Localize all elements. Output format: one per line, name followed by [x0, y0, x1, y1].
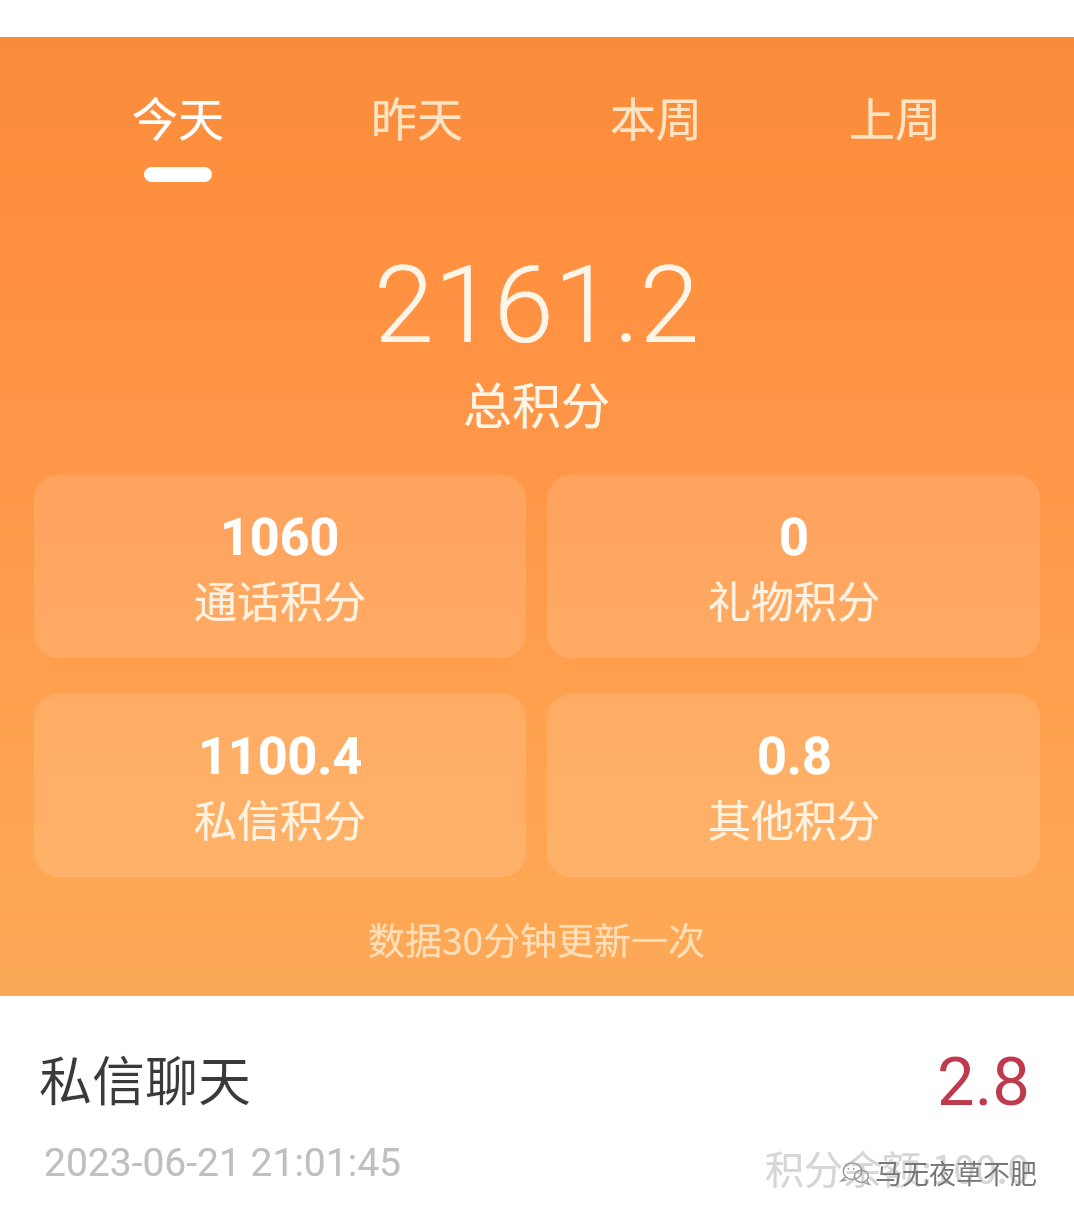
staticText: 昨天 — [371, 83, 463, 150]
staticText: 马无夜草不肥 — [875, 1153, 1037, 1189]
button[interactable]: 私信聊天 — [0, 1033, 1074, 1220]
staticText: 礼物积分 — [708, 568, 880, 630]
staticText: 上周 — [849, 83, 941, 150]
staticText: 本周 — [610, 83, 702, 150]
staticText: 0.8 — [757, 726, 832, 787]
staticText: 2023-06-21 21:01:45 — [44, 1140, 401, 1186]
staticText: 2161.2 — [374, 242, 700, 369]
button[interactable]: 昨天 — [297, 37, 536, 242]
staticText: 2.8 — [937, 1043, 1030, 1122]
staticText: 私信积分 — [194, 787, 366, 849]
staticText: 0 — [779, 507, 809, 568]
button[interactable]: 本周 — [536, 37, 775, 242]
button[interactable]: 0.8 — [547, 694, 1040, 877]
staticText: 今天 — [132, 83, 224, 150]
button[interactable]: 0 — [547, 475, 1040, 658]
other: WeChat — [838, 1155, 871, 1188]
staticText: 其他积分 — [708, 787, 880, 849]
staticText: 1060 — [220, 507, 340, 568]
staticText: 数据30分钟更新一次 — [368, 912, 706, 966]
button[interactable]: 上周 — [775, 37, 1014, 242]
button[interactable]: 今天 — [58, 37, 297, 242]
button[interactable]: 1060 — [34, 475, 526, 658]
button[interactable]: 1100.4 — [34, 694, 526, 877]
staticText: 1100.4 — [198, 726, 363, 787]
staticText: 总积分 — [463, 367, 611, 438]
staticText: 积分余额:100.0 — [765, 1139, 1030, 1195]
staticText: 通话积分 — [194, 568, 366, 630]
staticText: 私信聊天 — [39, 1040, 251, 1117]
